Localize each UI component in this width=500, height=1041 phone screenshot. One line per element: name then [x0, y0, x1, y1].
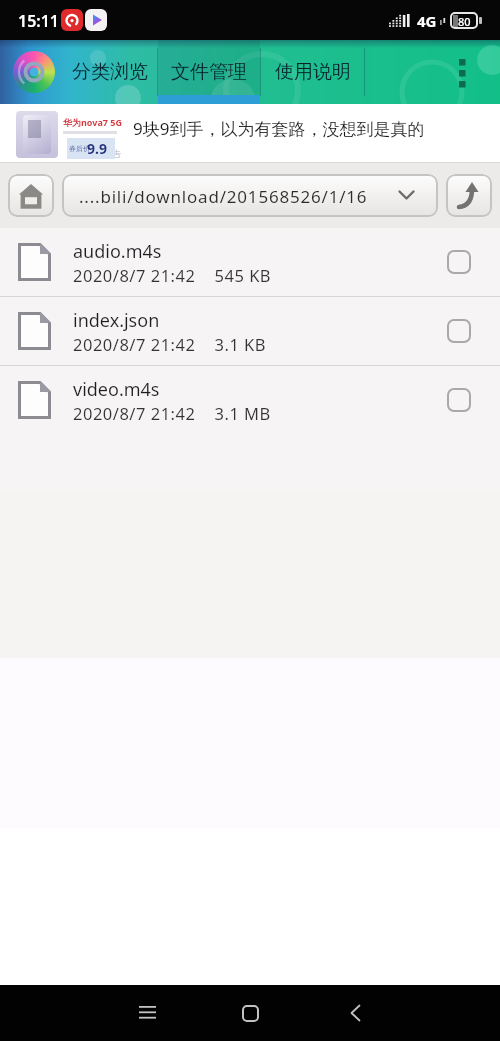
staticText: 华为nova7 5G [63, 116, 122, 128]
staticText: 2020/8/7 21:42 545 KB [73, 264, 272, 286]
staticText: 9.9 [87, 139, 107, 158]
button[interactable]: 华为nova7 5G [0, 104, 500, 163]
staticText: 分类浏览 [72, 60, 148, 84]
button[interactable] [447, 319, 471, 343]
staticText: 80 [458, 14, 471, 29]
button[interactable]: 分类浏览 [62, 40, 157, 104]
button[interactable]: index.json [0, 297, 500, 365]
button[interactable] [446, 174, 492, 217]
button[interactable]: audio.m4s [0, 228, 500, 296]
button[interactable]: 使用说明 [261, 40, 364, 104]
staticText: 4G [417, 11, 437, 31]
button[interactable] [8, 174, 54, 217]
button[interactable] [230, 993, 270, 1033]
staticText: index.json [73, 308, 160, 333]
button[interactable] [127, 993, 167, 1033]
staticText: 券后价 [69, 144, 90, 153]
button[interactable] [448, 48, 478, 96]
button[interactable] [447, 250, 471, 274]
staticText: 广告 [103, 148, 121, 159]
staticText: 文件管理 [171, 60, 247, 84]
staticText: 9块9到手，以为有套路，没想到是真的 [133, 117, 425, 140]
button[interactable] [335, 993, 375, 1033]
button[interactable]: 文件管理 [158, 40, 260, 104]
staticText: audio.m4s [73, 239, 162, 264]
staticText: 使用说明 [275, 60, 351, 84]
staticText: 15:11 [18, 10, 60, 32]
button[interactable]: video.m4s [0, 366, 500, 434]
staticText: 2020/8/7 21:42 3.1 KB [73, 333, 267, 355]
button[interactable] [447, 388, 471, 412]
staticText: ....bili/download/201568526/1/16 [79, 185, 368, 208]
button[interactable]: ....bili/download/201568526/1/16 [62, 174, 438, 217]
staticText: 2020/8/7 21:42 3.1 MB [73, 402, 271, 424]
staticText: video.m4s [73, 377, 160, 402]
